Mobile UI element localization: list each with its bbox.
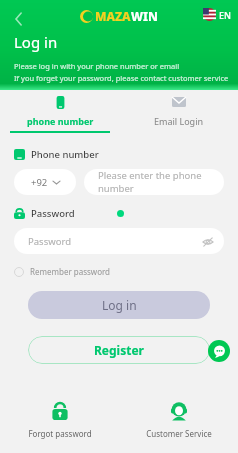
staticText: Forgot password xyxy=(28,428,92,439)
staticText: Password xyxy=(31,207,75,220)
button[interactable]: Register xyxy=(28,336,210,364)
staticText: +92 xyxy=(31,176,48,189)
staticText: phone number xyxy=(27,115,94,127)
staticText: Register xyxy=(94,342,144,358)
button[interactable]: Forgot password xyxy=(0,401,119,439)
button[interactable]: Remember password xyxy=(14,266,111,277)
button[interactable]: Email Login xyxy=(119,90,238,138)
staticText: Please log in with your phone number or … xyxy=(14,61,180,71)
staticText: EN xyxy=(219,9,231,21)
staticText: WIN xyxy=(131,8,158,24)
button[interactable]: Customer Service xyxy=(119,401,238,439)
button[interactable]: Chat support xyxy=(208,340,230,362)
staticText: MAZA xyxy=(95,8,131,24)
button[interactable]: +92 xyxy=(14,169,76,195)
staticText: If you forget your password, please cont… xyxy=(14,73,229,83)
button[interactable]: Language English xyxy=(203,8,231,21)
staticText: Log in xyxy=(14,32,58,52)
staticText: Email Login xyxy=(154,115,204,127)
button[interactable]: Toggle password visibility xyxy=(201,235,214,248)
button[interactable]: Back xyxy=(8,8,30,30)
button[interactable]: Please enter the phone number xyxy=(84,169,224,195)
button[interactable]: Log in xyxy=(28,291,210,319)
staticText: Remember password xyxy=(30,266,111,277)
staticText: Password xyxy=(28,235,71,248)
button[interactable]: phone number xyxy=(0,90,119,138)
staticText: Please enter the phone number xyxy=(98,169,224,195)
button[interactable]: Password xyxy=(14,228,224,254)
staticText: Customer Service xyxy=(146,428,212,439)
staticText: Phone number xyxy=(31,148,99,161)
staticText: Log in xyxy=(102,297,137,313)
